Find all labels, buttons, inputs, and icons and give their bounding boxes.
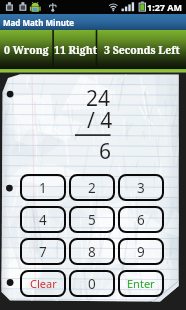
button[interactable]: 5 xyxy=(69,206,115,233)
button[interactable]: Enter xyxy=(118,270,164,297)
button[interactable]: 0 Wrong xyxy=(0,30,53,69)
button[interactable]: Mad Math Minute xyxy=(0,14,186,30)
staticText: Clear xyxy=(30,276,57,291)
staticText: 8 xyxy=(88,243,96,261)
staticText: 7 xyxy=(39,243,47,261)
staticText: Enter xyxy=(127,276,155,291)
button[interactable]: 3 Seconds Left xyxy=(97,30,186,69)
staticText: 24 xyxy=(86,84,111,113)
button[interactable]: 8 xyxy=(69,238,115,265)
staticText: 11 Right xyxy=(54,43,97,57)
staticText: 3 Seconds Left xyxy=(104,43,180,57)
staticText: Mad Math Minute xyxy=(3,17,75,28)
staticText: 6 xyxy=(137,211,145,229)
button[interactable]: 1 xyxy=(20,174,66,201)
button[interactable]: 2 xyxy=(69,174,115,201)
button[interactable]: 3 xyxy=(118,174,164,201)
staticText: 9 xyxy=(137,243,145,261)
staticText: 3 xyxy=(137,179,145,197)
staticText: 2 xyxy=(88,179,96,197)
button[interactable]: 9 xyxy=(118,238,164,265)
button[interactable]: 6 xyxy=(118,206,164,233)
staticText: 0 Wrong xyxy=(4,43,49,57)
staticText: 1 xyxy=(39,179,47,197)
staticText: 6 xyxy=(99,137,112,166)
button[interactable]: Clear xyxy=(20,270,66,297)
button[interactable]: 0 xyxy=(69,270,115,297)
button[interactable]: 4 xyxy=(20,206,66,233)
staticText: / 4 xyxy=(87,106,113,135)
staticText: 0 xyxy=(88,275,96,293)
button[interactable]: 7 xyxy=(20,238,66,265)
staticText: 5 xyxy=(88,211,96,229)
button[interactable]: 11 Right xyxy=(53,30,97,69)
staticText: 4 xyxy=(39,211,47,229)
staticText: 1:27 AM xyxy=(147,1,183,13)
